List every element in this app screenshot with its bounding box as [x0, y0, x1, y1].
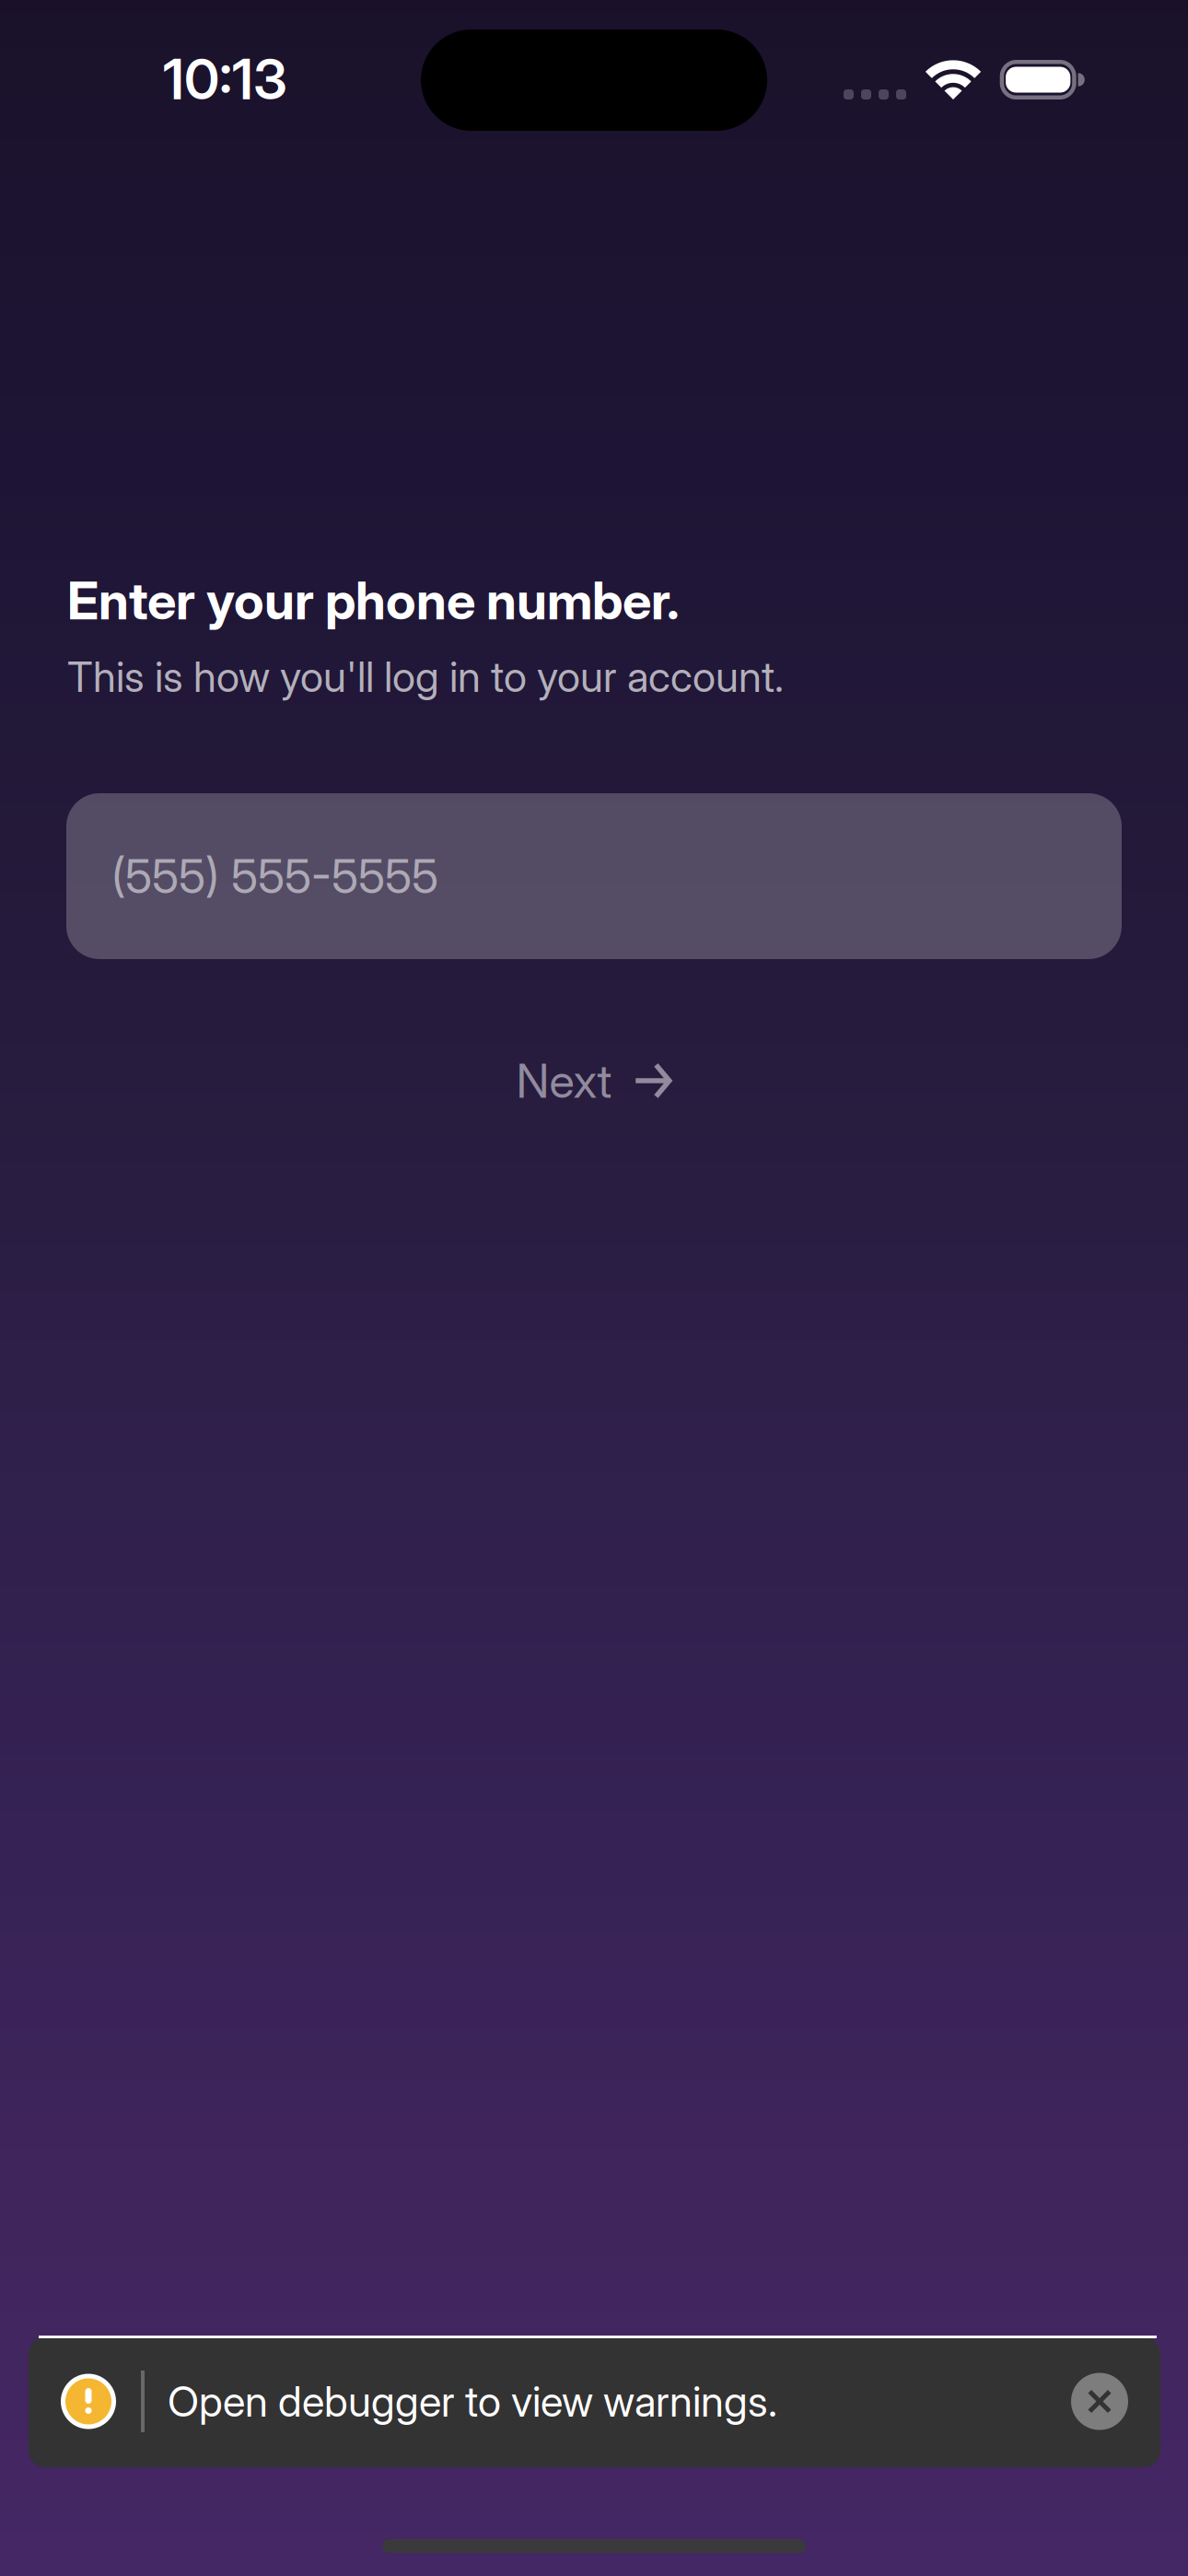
staticText: Enter your phone number.	[67, 569, 680, 632]
button[interactable]: Dismiss warning	[1060, 2362, 1139, 2441]
staticText: Open debugger to view warnings.	[168, 2376, 777, 2427]
staticText: 10:13	[163, 46, 287, 113]
staticText: Next	[516, 1052, 612, 1109]
staticText: This is how you'll log in to your accoun…	[67, 651, 784, 702]
staticText: (555) 555-5555	[111, 848, 438, 904]
button[interactable]: Next	[0, 1036, 1188, 1125]
